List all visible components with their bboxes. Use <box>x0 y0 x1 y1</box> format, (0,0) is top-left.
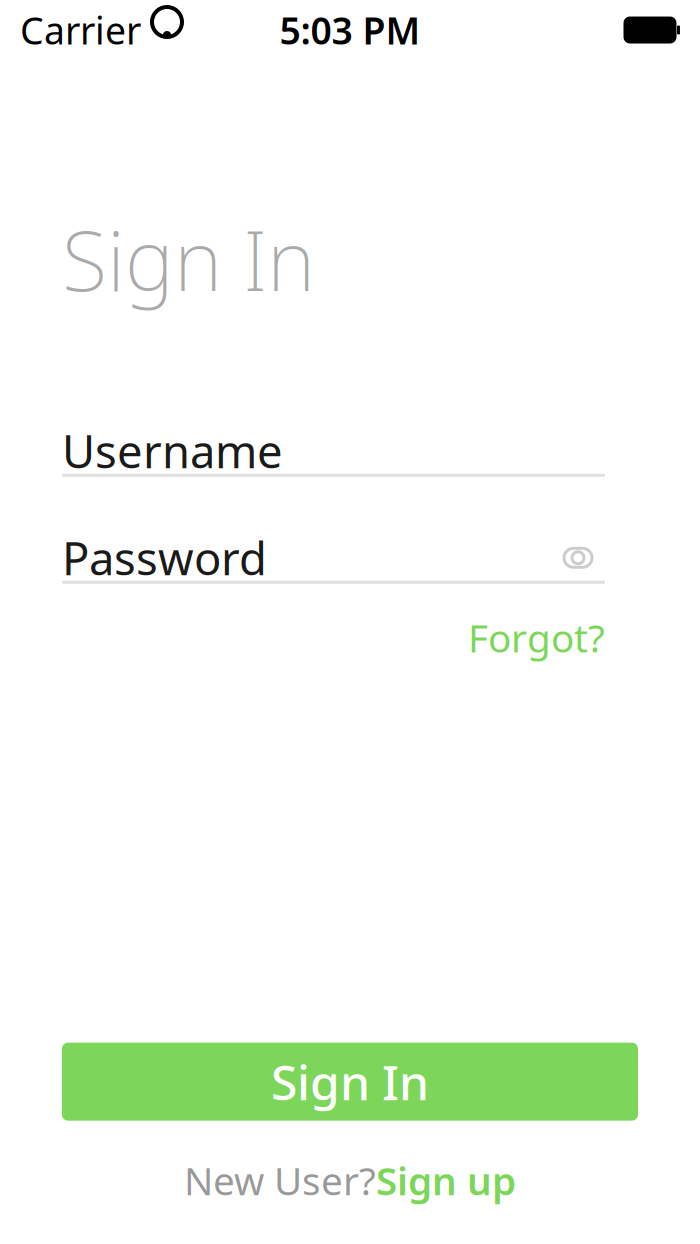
staticText: Sign In <box>62 204 315 314</box>
button[interactable]: Sign up <box>376 1155 516 1206</box>
button[interactable]: Show password <box>551 535 605 581</box>
button[interactable]: Sign In <box>62 1043 638 1121</box>
staticText: Forgot? <box>468 612 605 663</box>
staticText: Password <box>62 528 267 588</box>
staticText: Carrier <box>20 5 141 55</box>
button[interactable]: Forgot? <box>468 606 605 669</box>
staticText: 5:03 PM <box>279 5 420 55</box>
staticText: New User? <box>184 1155 376 1206</box>
staticText: Sign up <box>376 1155 516 1206</box>
staticText: Sign In <box>271 1050 429 1113</box>
staticText: Username <box>62 421 283 481</box>
